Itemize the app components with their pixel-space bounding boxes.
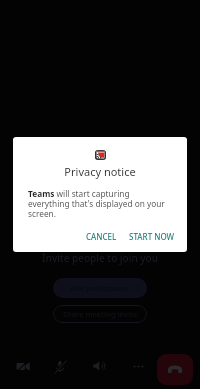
button[interactable]: START NOW bbox=[125, 228, 179, 245]
button[interactable]: End call bbox=[157, 354, 193, 385]
staticText: START NOW bbox=[129, 231, 175, 242]
button[interactable]: Turn camera on bbox=[7, 350, 39, 382]
button[interactable]: CANCEL bbox=[82, 228, 121, 245]
staticText: Teams will start capturing everything th… bbox=[28, 188, 166, 219]
staticText: Share meeting invite bbox=[63, 309, 138, 319]
button[interactable]: Unmute bbox=[44, 350, 76, 382]
button[interactable]: Share meeting invite bbox=[53, 305, 147, 323]
staticText: Privacy notice bbox=[13, 164, 187, 179]
staticText: Invite people to join you bbox=[0, 251, 200, 265]
staticText: CANCEL bbox=[86, 231, 117, 242]
button[interactable]: Add participants bbox=[53, 278, 147, 298]
button[interactable]: Speaker bbox=[83, 350, 115, 382]
